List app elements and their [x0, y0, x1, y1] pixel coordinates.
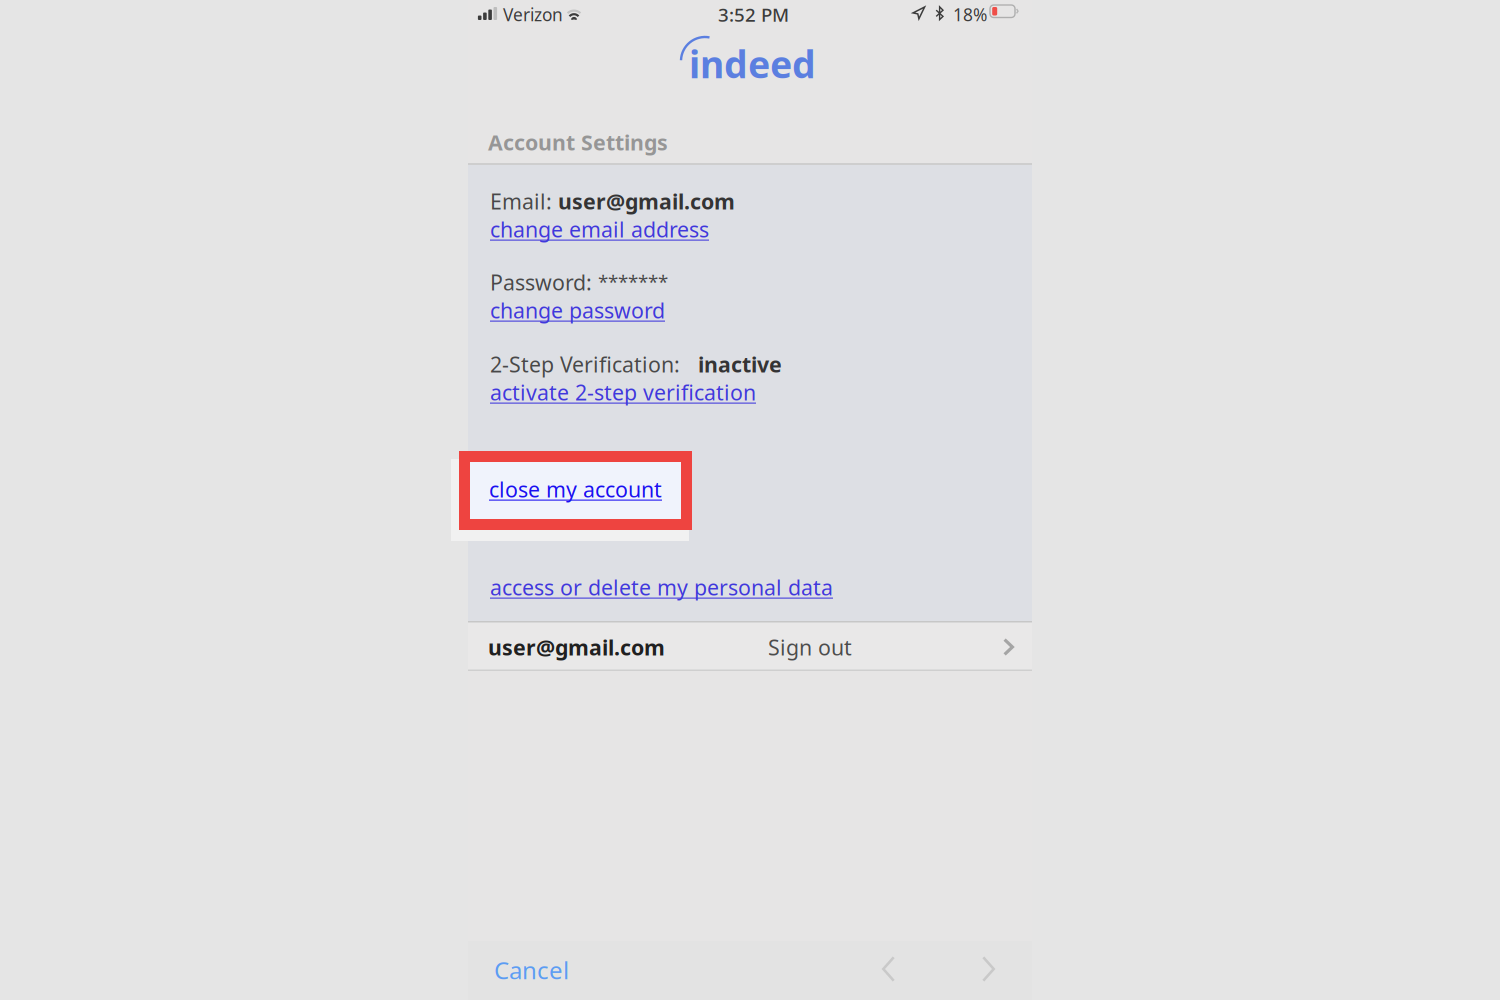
staticText: close my account	[489, 475, 662, 503]
staticText: access or delete my personal data	[490, 573, 833, 601]
button[interactable]: access or delete my personal data	[490, 573, 833, 601]
staticText: 2-Step Verification:	[490, 350, 698, 378]
staticText: Account Settings	[488, 128, 668, 156]
staticText: activate 2-step verification	[490, 378, 756, 406]
staticText: *******	[598, 269, 668, 294]
button[interactable]: user@gmail.com	[468, 621, 1032, 671]
button[interactable]: close my account	[470, 462, 681, 519]
staticText: Verizon	[503, 3, 563, 26]
staticText: Email:	[490, 187, 558, 215]
staticText: change password	[490, 296, 665, 324]
staticText: Cancel	[494, 954, 569, 986]
staticText: 3:52 PM	[718, 2, 789, 27]
button[interactable]: Cancel	[488, 950, 575, 990]
staticText: user@gmail.com	[488, 633, 665, 661]
button[interactable]: change email address	[490, 215, 709, 243]
button[interactable]: Back	[874, 948, 903, 990]
button[interactable]: change password	[490, 296, 665, 324]
staticText: inactive	[698, 350, 782, 378]
button[interactable]: activate 2-step verification	[490, 378, 756, 406]
staticText: change email address	[490, 215, 709, 243]
staticText: Sign out	[768, 633, 852, 661]
button[interactable]: Forward	[974, 948, 1003, 990]
staticText: 18%	[953, 3, 987, 26]
staticText: Password:	[490, 268, 598, 296]
staticText: user@gmail.com	[558, 187, 735, 215]
staticText: indeed	[689, 39, 816, 89]
